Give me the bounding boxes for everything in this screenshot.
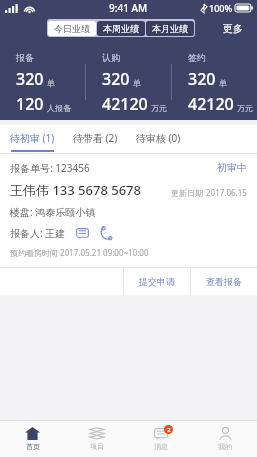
button[interactable]: 项目 <box>65 421 129 457</box>
staticText: 初审中 <box>217 161 247 174</box>
staticText: 单 <box>47 78 55 88</box>
staticText: 9:41 AM <box>109 1 148 15</box>
staticText: 万元 <box>151 103 167 113</box>
button[interactable]: 我的 <box>193 421 257 457</box>
staticText: 楼盘: 鸿泰乐颐小镇 <box>10 205 96 219</box>
staticText: 更多 <box>223 22 243 35</box>
staticText: 万元 <box>237 103 253 113</box>
staticText: 120 <box>16 93 44 115</box>
button[interactable]: Call <box>98 225 114 241</box>
staticText: 2017.06.15 <box>206 187 247 198</box>
staticText: 王伟伟 133 5678 5678 <box>10 181 141 199</box>
staticText: 今日业绩 <box>54 23 90 34</box>
button[interactable]: 首页 <box>0 421 65 457</box>
button[interactable]: Message <box>74 225 90 241</box>
staticText: 42120 <box>188 93 234 115</box>
staticText: 320 <box>16 68 44 90</box>
staticText: 报备人: 王建 <box>10 226 66 240</box>
staticText: 预约看房时间 2017.05.21 09:00~10:00 <box>10 247 149 258</box>
staticText: 报备单号: 123456 <box>10 161 90 175</box>
staticText: 人报备 <box>47 103 71 113</box>
staticText: 消息 <box>154 442 168 451</box>
button[interactable]: 本月业绩 <box>146 21 194 36</box>
staticText: 320 <box>188 68 216 90</box>
staticText: 本周业绩 <box>103 23 139 34</box>
staticText: 签约 <box>188 52 206 63</box>
staticText: 报备 <box>16 52 34 63</box>
button[interactable]: 待带看 (2) <box>73 125 118 153</box>
staticText: 首页 <box>26 442 40 451</box>
button[interactable]: 更多 <box>213 19 253 38</box>
staticText: 本月业绩 <box>152 23 188 34</box>
staticText: 查看报备 <box>206 276 242 287</box>
staticText: 待审核 (0) <box>136 131 181 145</box>
button[interactable]: 今日业绩 <box>48 21 96 36</box>
staticText: 我的 <box>218 442 232 451</box>
staticText: 100% <box>209 2 233 14</box>
button[interactable]: 待初审 (1) <box>10 125 55 153</box>
staticText: 320 <box>102 68 130 90</box>
staticText: 提交申请 <box>139 276 175 287</box>
staticText: 更新日期 <box>171 187 206 198</box>
staticText: 项目 <box>90 442 104 451</box>
button[interactable]: 提交申请 <box>124 268 190 295</box>
staticText: 待初审 (1) <box>10 131 55 145</box>
staticText: 42120 <box>102 93 148 115</box>
button[interactable]: 本周业绩 <box>97 21 145 36</box>
staticText: 待带看 (2) <box>73 131 118 145</box>
staticText: 2 <box>167 426 171 434</box>
button[interactable]: 待审核 (0) <box>136 125 181 153</box>
staticText: 单 <box>219 78 227 88</box>
staticText: 认购 <box>102 52 120 63</box>
button[interactable]: 2 <box>129 421 193 457</box>
button[interactable]: 查看报备 <box>191 268 257 295</box>
staticText: 单 <box>133 78 141 88</box>
